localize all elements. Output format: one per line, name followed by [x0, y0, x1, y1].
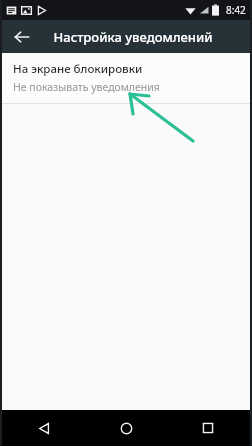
button[interactable]: Главный экран [110, 412, 142, 444]
button[interactable]: Назад [28, 412, 60, 444]
staticText: Настройка уведомлений [53, 28, 213, 46]
staticText: На экране блокировки [13, 61, 143, 77]
button[interactable]: Недавние приложения [192, 412, 224, 444]
staticText: 8:42 [226, 3, 246, 17]
button[interactable]: Назад [8, 23, 36, 51]
button[interactable]: На экране блокировки [0, 53, 252, 103]
staticText: Не показывать уведомления [13, 80, 160, 94]
